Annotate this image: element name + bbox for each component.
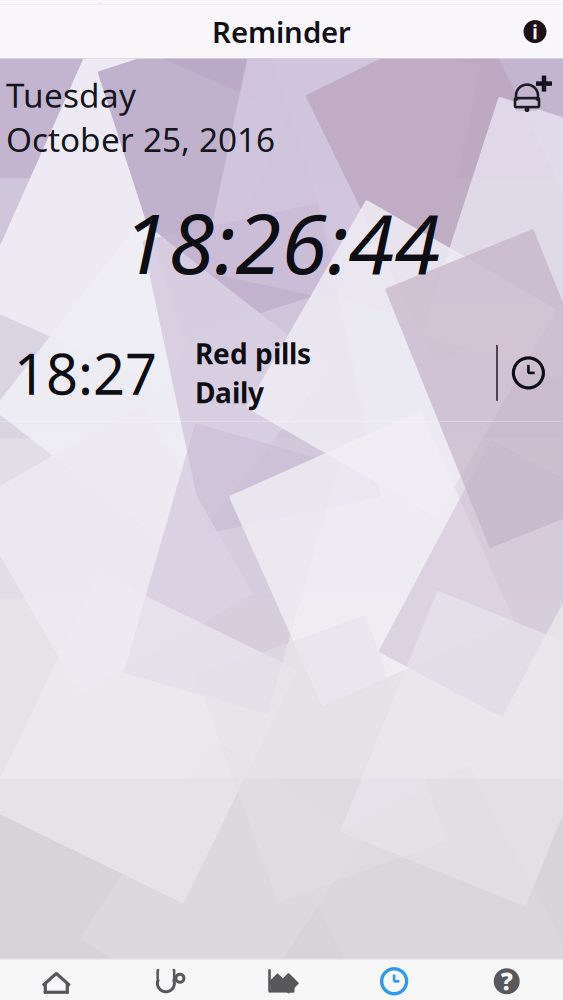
staticText: 18:26:44 bbox=[122, 187, 440, 297]
button[interactable]: ? bbox=[450, 962, 563, 1000]
staticText: Tuesday bbox=[6, 73, 136, 117]
staticText: Reminder bbox=[212, 12, 351, 51]
button[interactable]: INSIGHT bbox=[225, 962, 338, 1000]
staticText: October 25, 2016 bbox=[6, 117, 275, 161]
staticText: Red pills bbox=[195, 335, 311, 372]
staticText: Daily bbox=[195, 374, 264, 411]
button[interactable]: REMINDER bbox=[338, 961, 450, 1000]
button[interactable]: HOME bbox=[0, 962, 113, 1000]
button[interactable]: SYMPTOMS bbox=[113, 962, 225, 1000]
button[interactable]: 18:27 bbox=[0, 325, 563, 422]
button[interactable]: Add reminder bbox=[503, 73, 563, 117]
staticText: 18:27 bbox=[14, 336, 157, 410]
staticText: i bbox=[532, 18, 538, 45]
staticText: ? bbox=[501, 965, 513, 997]
button[interactable]: Information bbox=[513, 10, 557, 54]
